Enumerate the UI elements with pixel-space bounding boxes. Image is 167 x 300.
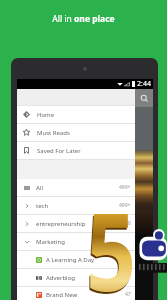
staticText: A Learning A Day xyxy=(46,256,119,264)
staticText: 5 xyxy=(85,177,136,300)
staticText: Saved For Later xyxy=(37,147,81,155)
button[interactable]: Adverblog xyxy=(17,269,135,286)
button[interactable]: Must Reads xyxy=(17,124,135,141)
staticText: 47 xyxy=(125,291,131,298)
staticText: tech xyxy=(36,202,119,210)
button[interactable]: Marketing xyxy=(17,233,135,250)
staticText: Adverblog xyxy=(46,274,135,282)
staticText: 499+ xyxy=(119,256,131,263)
button[interactable]: tech xyxy=(17,197,135,214)
staticText: 2:44 xyxy=(137,79,151,89)
button[interactable]: A Learning A Day xyxy=(17,251,135,268)
button[interactable]: Brand New xyxy=(17,287,135,300)
staticText: Marketing xyxy=(36,238,135,246)
staticText: 5 xyxy=(86,175,137,300)
staticText: All in one place xyxy=(0,13,167,25)
staticText: Home xyxy=(37,111,55,119)
staticText: 499+ xyxy=(119,184,131,191)
button[interactable]: Search xyxy=(140,94,149,103)
staticText: 499+ xyxy=(119,202,131,209)
button[interactable]: Home xyxy=(17,106,135,123)
staticText: Brand New xyxy=(46,291,125,299)
staticText: Must Reads xyxy=(37,129,70,137)
staticText: entrepreneurship xyxy=(36,220,122,228)
staticText: 450 xyxy=(122,220,131,227)
button[interactable]: All xyxy=(17,179,135,196)
staticText: All xyxy=(36,184,119,192)
button[interactable]: entrepreneurship xyxy=(17,215,135,232)
button[interactable]: Saved For Later xyxy=(17,142,135,159)
